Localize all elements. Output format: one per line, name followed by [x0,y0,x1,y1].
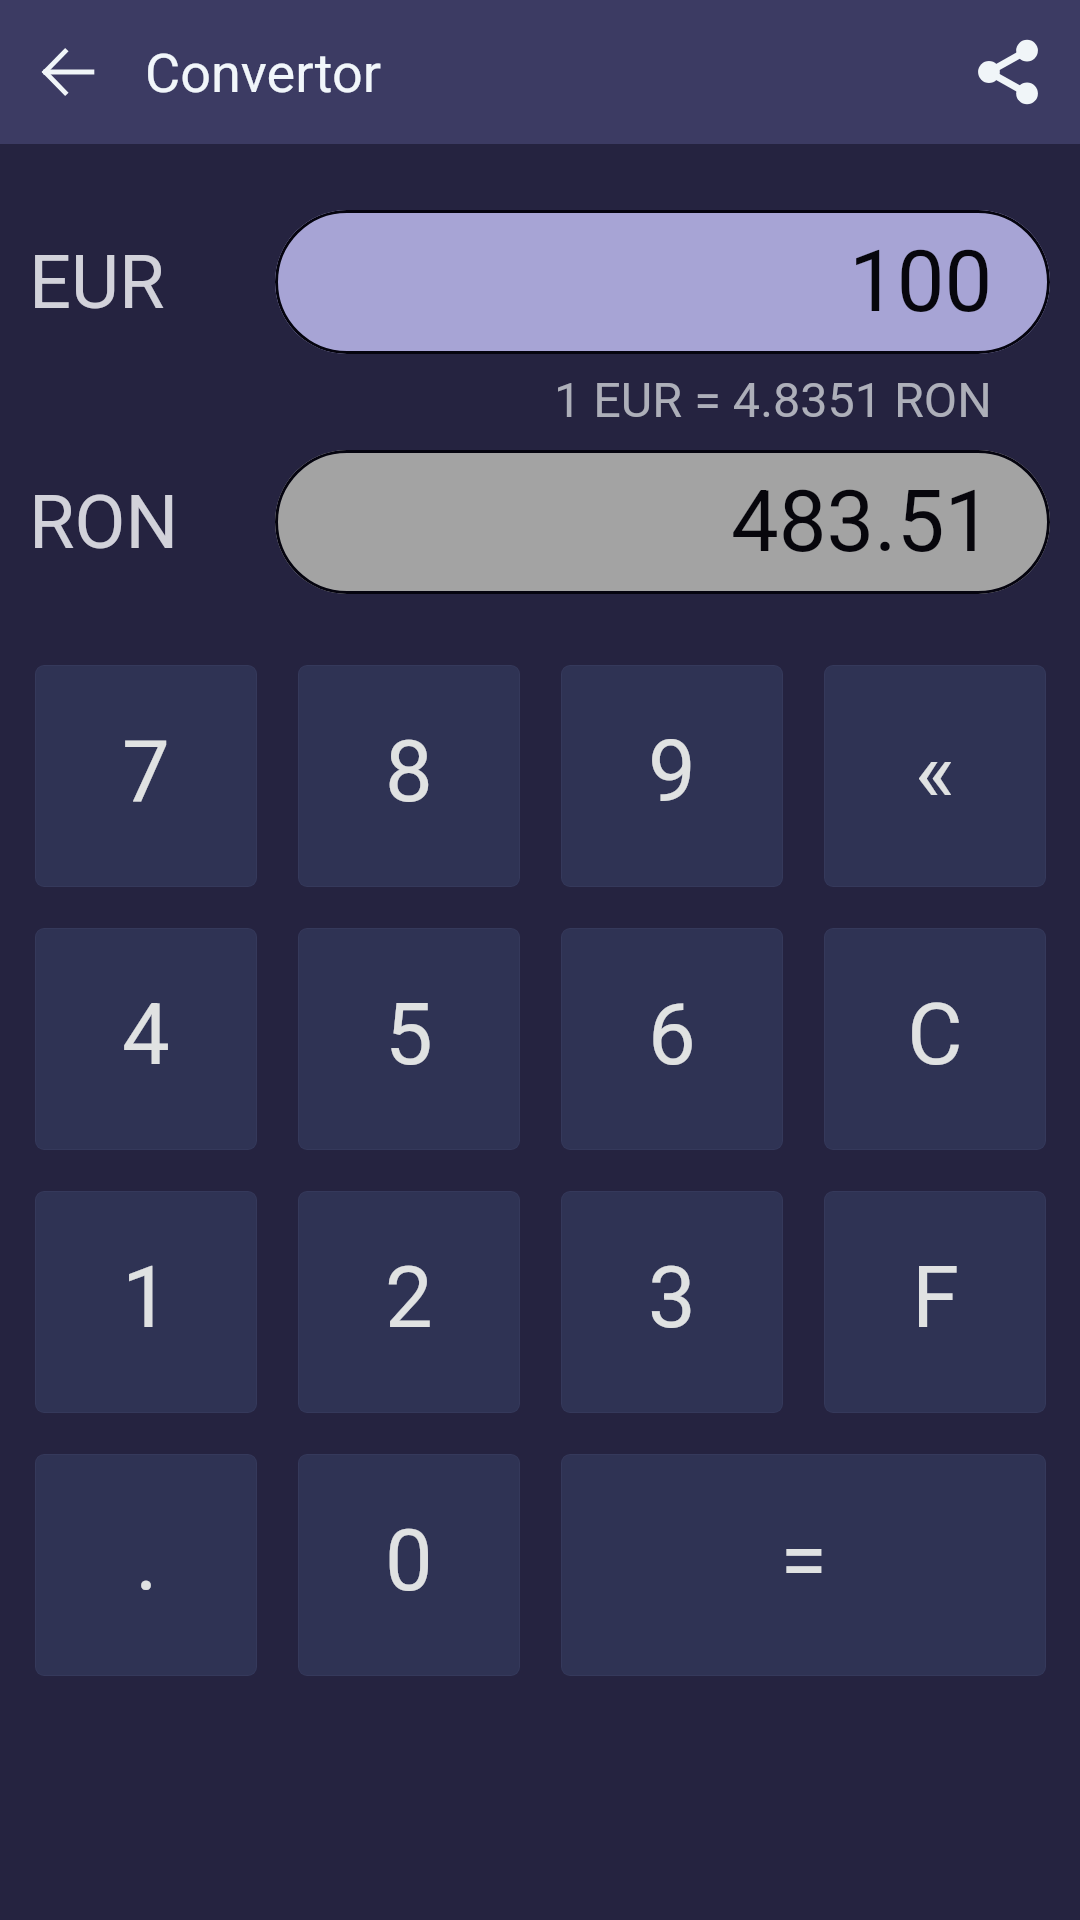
staticText: 1 EUR = 4.8351 RON [554,372,992,429]
staticText: . [135,1511,158,1611]
button[interactable]: 2 [298,1191,520,1413]
staticText: EUR [29,239,165,326]
staticText: Convertor [145,42,382,105]
button[interactable]: « [824,665,1046,887]
staticText: 9 [648,722,696,822]
staticText: 3 [648,1248,696,1348]
staticText: RON [29,479,179,566]
staticText: 0 [385,1511,433,1611]
staticText: F [912,1248,959,1348]
button[interactable]: 9 [561,665,783,887]
button[interactable]: 6 [561,928,783,1150]
button[interactable]: F [824,1191,1046,1413]
staticText: 483.51 [731,472,993,572]
button[interactable]: = [561,1454,1046,1676]
button[interactable]: 7 [35,665,257,887]
staticText: 8 [385,722,433,822]
staticText: 2 [385,1248,433,1348]
staticText: 7 [122,722,170,822]
button[interactable]: 100 [275,210,1050,354]
button[interactable]: 483.51 [275,450,1050,594]
button[interactable]: 0 [298,1454,520,1676]
button[interactable]: C [824,928,1046,1150]
button[interactable]: 5 [298,928,520,1150]
staticText: 5 [385,985,433,1085]
button[interactable]: 4 [35,928,257,1150]
button[interactable]: 3 [561,1191,783,1413]
button[interactable]: 1 [35,1191,257,1413]
button[interactable]: Back [20,24,116,120]
staticText: 100 [849,232,993,332]
button[interactable]: Share [960,24,1056,120]
button[interactable]: 8 [298,665,520,887]
staticText: « [915,722,955,822]
button[interactable]: . [35,1454,257,1676]
staticText: C [907,985,963,1085]
staticText: = [780,1511,827,1611]
staticText: 4 [122,985,170,1085]
staticText: 6 [648,985,696,1085]
staticText: 1 [122,1248,170,1348]
